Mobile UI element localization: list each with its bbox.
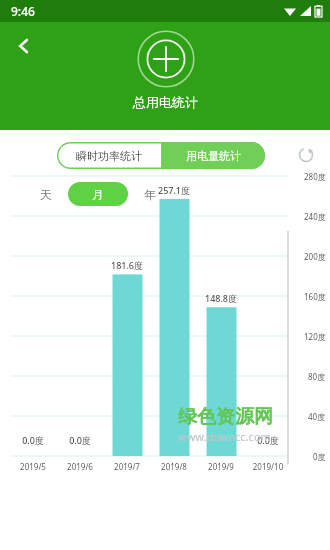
button[interactable]: Refresh — [292, 141, 320, 169]
staticText: 用电量统计 — [186, 149, 241, 163]
staticText: 2019/8 — [150, 461, 198, 472]
staticText: 绿色资源网 — [178, 405, 273, 429]
staticText: 240度 — [304, 211, 326, 222]
button[interactable]: 瞬时功率统计 — [57, 142, 161, 169]
button[interactable]: 天 — [28, 182, 64, 206]
staticText: 2019/9 — [197, 461, 245, 472]
staticText: www.downcc.com — [178, 429, 271, 444]
button[interactable]: Back — [6, 28, 42, 64]
staticText: 2019/10 — [244, 461, 292, 472]
staticText: 80度 — [308, 371, 326, 382]
staticText: 年 — [144, 187, 156, 202]
staticText: 天 — [40, 187, 52, 202]
staticText: 2019/6 — [56, 461, 104, 472]
button[interactable]: 总用电统计 — [133, 30, 198, 110]
staticText: 月 — [92, 187, 104, 202]
staticText: 148.8度 — [197, 292, 245, 304]
staticText: 0度 — [313, 451, 326, 462]
staticText: 257.1度 — [150, 184, 198, 196]
staticText: 40度 — [308, 411, 326, 422]
button[interactable]: 年 — [132, 182, 168, 206]
staticText: 9:46 — [11, 3, 35, 19]
staticText: 0.0度 — [9, 434, 57, 446]
staticText: 瞬时功率统计 — [76, 149, 142, 163]
staticText: 总用电统计 — [133, 94, 198, 110]
staticText: 280度 — [304, 171, 326, 182]
staticText: 2019/7 — [103, 461, 151, 472]
staticText: 0.0度 — [56, 434, 104, 446]
button[interactable]: 月 — [68, 182, 128, 206]
staticText: 160度 — [304, 291, 326, 302]
button[interactable]: 用电量统计 — [161, 142, 265, 169]
staticText: 200度 — [304, 251, 326, 262]
staticText: 181.6度 — [103, 259, 151, 271]
staticText: 120度 — [304, 331, 326, 342]
staticText: 2019/5 — [9, 461, 57, 472]
staticText: 0.0度 — [244, 434, 292, 446]
